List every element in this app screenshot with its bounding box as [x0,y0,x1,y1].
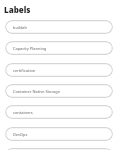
staticText: Container Native Storage [13,89,60,94]
button[interactable]: Container Native Storage [5,84,113,98]
button[interactable]: Capacity Planning [5,41,113,55]
button[interactable]: buildah [5,20,113,34]
staticText: Labels [4,4,31,15]
staticText: DevOps [13,132,28,137]
staticText: Capacity Planning [13,46,47,51]
button[interactable]: DevOps [5,127,113,141]
staticText: containers [13,110,33,115]
staticText: buildah [13,25,28,30]
button[interactable]: certification [5,63,113,77]
button[interactable]: containers [5,105,113,119]
staticText: certification [13,68,36,73]
button[interactable]: Kubernetes [5,148,113,150]
